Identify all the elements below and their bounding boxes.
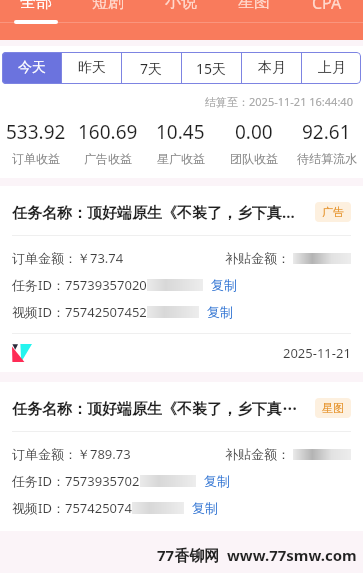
staticText: 星广收益	[157, 151, 205, 166]
staticText: 2025-11-21	[283, 344, 351, 362]
staticText: 533.92	[6, 119, 66, 145]
button[interactable]: 星图	[217, 0, 290, 40]
button[interactable]: 复制	[205, 303, 235, 321]
button[interactable]: 0.00	[217, 119, 290, 166]
staticText: 团队收益	[230, 151, 278, 166]
staticText: 75739357020	[65, 276, 147, 294]
staticText: 任务名称：顶好端原生《不装了，乡下真...	[12, 202, 307, 222]
button[interactable]: 上月	[302, 52, 361, 84]
button[interactable]: 全部	[0, 0, 72, 40]
staticText: 订单收益	[12, 151, 60, 166]
staticText: 757425074	[65, 499, 132, 517]
staticText: 7天	[140, 59, 163, 78]
staticText: 任务ID：	[12, 276, 65, 294]
button[interactable]: 广告	[315, 202, 351, 222]
staticText: 复制	[211, 277, 237, 293]
staticText: 复制	[207, 304, 233, 320]
staticText: 视频ID：	[12, 303, 65, 321]
staticText: 补贴金额：	[225, 250, 290, 266]
staticText: 任务名称：顶好端原生《不装了，乡下真千...	[12, 398, 307, 418]
staticText: 订单金额：	[12, 250, 77, 266]
button[interactable]: Douyin platform	[12, 343, 32, 363]
staticText: 任务ID：	[12, 472, 65, 490]
staticText: 0.00	[235, 119, 273, 145]
staticText: 77香铆网	[157, 545, 220, 565]
button[interactable]: 今天	[2, 52, 61, 84]
button[interactable]: 533.92	[0, 119, 72, 166]
staticText: 广告收益	[84, 151, 132, 166]
staticText: 10.45	[156, 119, 205, 145]
staticText: ￥789.73	[77, 445, 131, 463]
button[interactable]: 任务名称：顶好端原生《不装了，乡下真...	[0, 186, 363, 372]
button[interactable]: 星图	[315, 398, 351, 418]
staticText: 全部	[20, 0, 52, 12]
staticText: 昨天	[78, 59, 106, 77]
button[interactable]: 15天	[182, 52, 241, 84]
button[interactable]: 10.45	[144, 119, 217, 166]
button[interactable]: 92.61	[290, 119, 363, 166]
button[interactable]: 160.69	[72, 119, 144, 166]
staticText: 今天	[18, 59, 46, 77]
staticText: 待结算流水	[297, 151, 357, 166]
staticText: 结算至：2025-11-21 16:44:40	[205, 94, 353, 109]
staticText: 15天	[196, 59, 227, 78]
staticText: 短剧	[92, 0, 124, 12]
button[interactable]: CPA	[290, 0, 363, 40]
staticText: 广告	[322, 205, 344, 219]
staticText: www.77smw.com	[227, 545, 357, 565]
button[interactable]: 复制	[190, 499, 220, 517]
staticText: 上月	[318, 59, 346, 77]
button[interactable]: 昨天	[62, 52, 121, 84]
button[interactable]: 短剧	[72, 0, 144, 40]
staticText: 复制	[204, 473, 230, 489]
staticText: ￥73.74	[77, 249, 124, 267]
button[interactable]: 复制	[209, 276, 239, 294]
staticText: 160.69	[78, 119, 138, 145]
staticText: 本月	[258, 59, 286, 77]
staticText: 92.61	[302, 119, 351, 145]
staticText: 复制	[192, 500, 218, 516]
staticText: 视频ID：	[12, 499, 65, 517]
staticText: 星图	[238, 0, 270, 12]
staticText: 小说	[165, 0, 197, 12]
staticText: 7573935702	[65, 472, 140, 490]
staticText: 补贴金额：	[225, 446, 290, 462]
staticText: 75742507452	[65, 303, 147, 321]
staticText: 订单金额：	[12, 446, 77, 462]
button[interactable]: 小说	[144, 0, 217, 40]
button[interactable]: 本月	[242, 52, 301, 84]
staticText: CPA	[312, 0, 342, 14]
button[interactable]: 复制	[202, 472, 232, 490]
button[interactable]: 7天	[122, 52, 181, 84]
staticText: 星图	[322, 401, 344, 415]
button[interactable]: 任务名称：顶好端原生《不装了，乡下真千...	[0, 382, 363, 531]
